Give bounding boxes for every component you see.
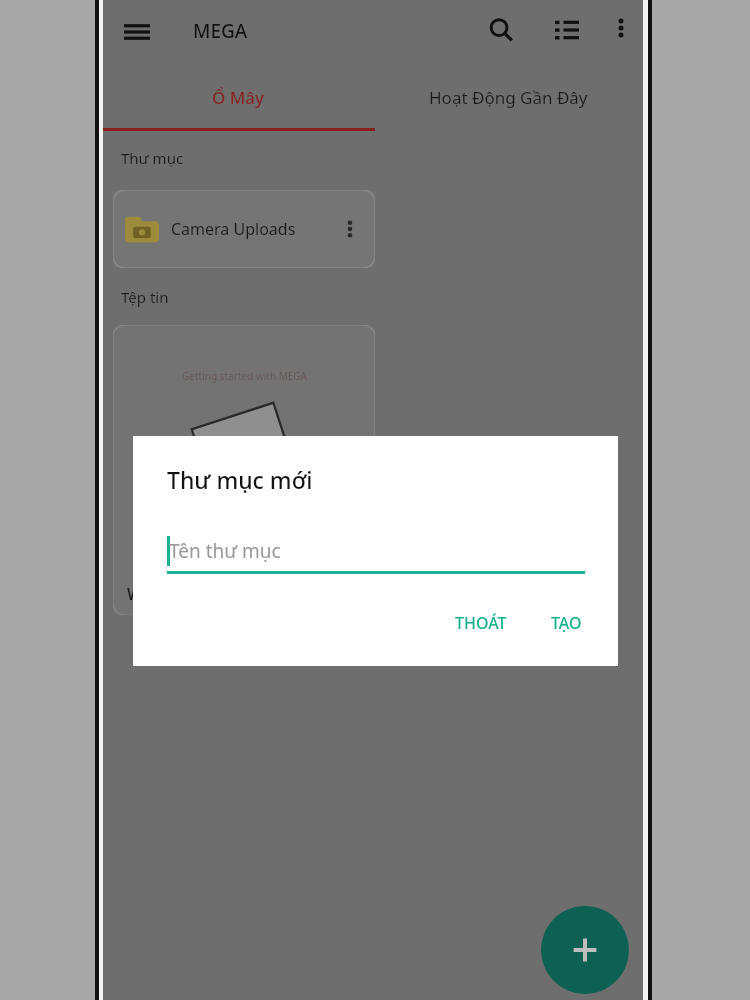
button[interactable]: Add	[541, 906, 629, 994]
button[interactable]: Search	[477, 6, 525, 54]
button[interactable]: More options	[599, 6, 643, 50]
staticText: Ổ Mây	[212, 86, 265, 109]
button[interactable]: Hoạt Động Gần Đây	[373, 62, 643, 132]
button[interactable]: Ổ Mây	[103, 62, 373, 132]
button[interactable]: Tên thư mục	[167, 534, 585, 578]
staticText: THOÁT	[455, 612, 507, 634]
staticText: Thư mục mới	[167, 464, 313, 495]
button[interactable]: THOÁT	[441, 602, 521, 644]
button[interactable]: Getting started with MEGA	[113, 325, 375, 615]
staticText: MEGA	[193, 18, 248, 44]
button[interactable]: Open navigation menu	[113, 8, 161, 56]
button[interactable]: TẠO	[537, 602, 596, 644]
staticText: Camera Uploads	[171, 218, 296, 240]
button[interactable]: Switch list view	[543, 6, 591, 54]
staticText: Hoạt Động Gần Đây	[429, 86, 588, 109]
staticText: Tên thư mục	[169, 538, 281, 564]
button[interactable]: Camera Uploads	[113, 190, 375, 268]
button[interactable]: Folder options	[329, 208, 371, 250]
staticText: Thư mục	[121, 148, 184, 168]
staticText: TẠO	[551, 612, 582, 634]
staticText: Getting started with MEGA	[182, 369, 307, 383]
staticText: Tệp tin	[121, 287, 169, 307]
staticText: We	[127, 583, 151, 605]
